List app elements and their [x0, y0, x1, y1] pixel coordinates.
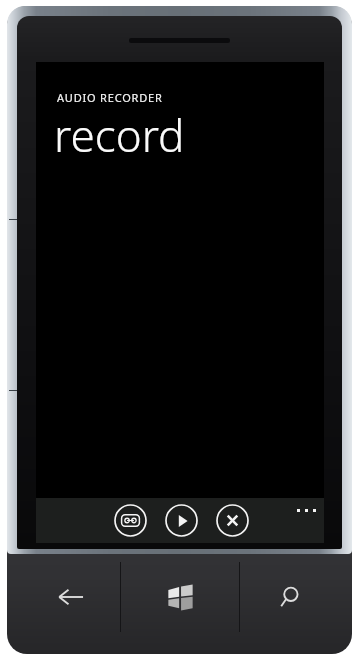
button[interactable]: Stop: [216, 504, 249, 537]
button[interactable]: Search: [240, 560, 339, 634]
staticText: AUDIO RECORDER: [57, 90, 163, 105]
button[interactable]: Start: [121, 560, 239, 634]
button[interactable]: More options: [288, 499, 324, 521]
button[interactable]: Play: [165, 504, 198, 537]
button[interactable]: Back: [21, 560, 120, 634]
staticText: record: [54, 105, 185, 165]
button[interactable]: Record: [114, 504, 147, 537]
